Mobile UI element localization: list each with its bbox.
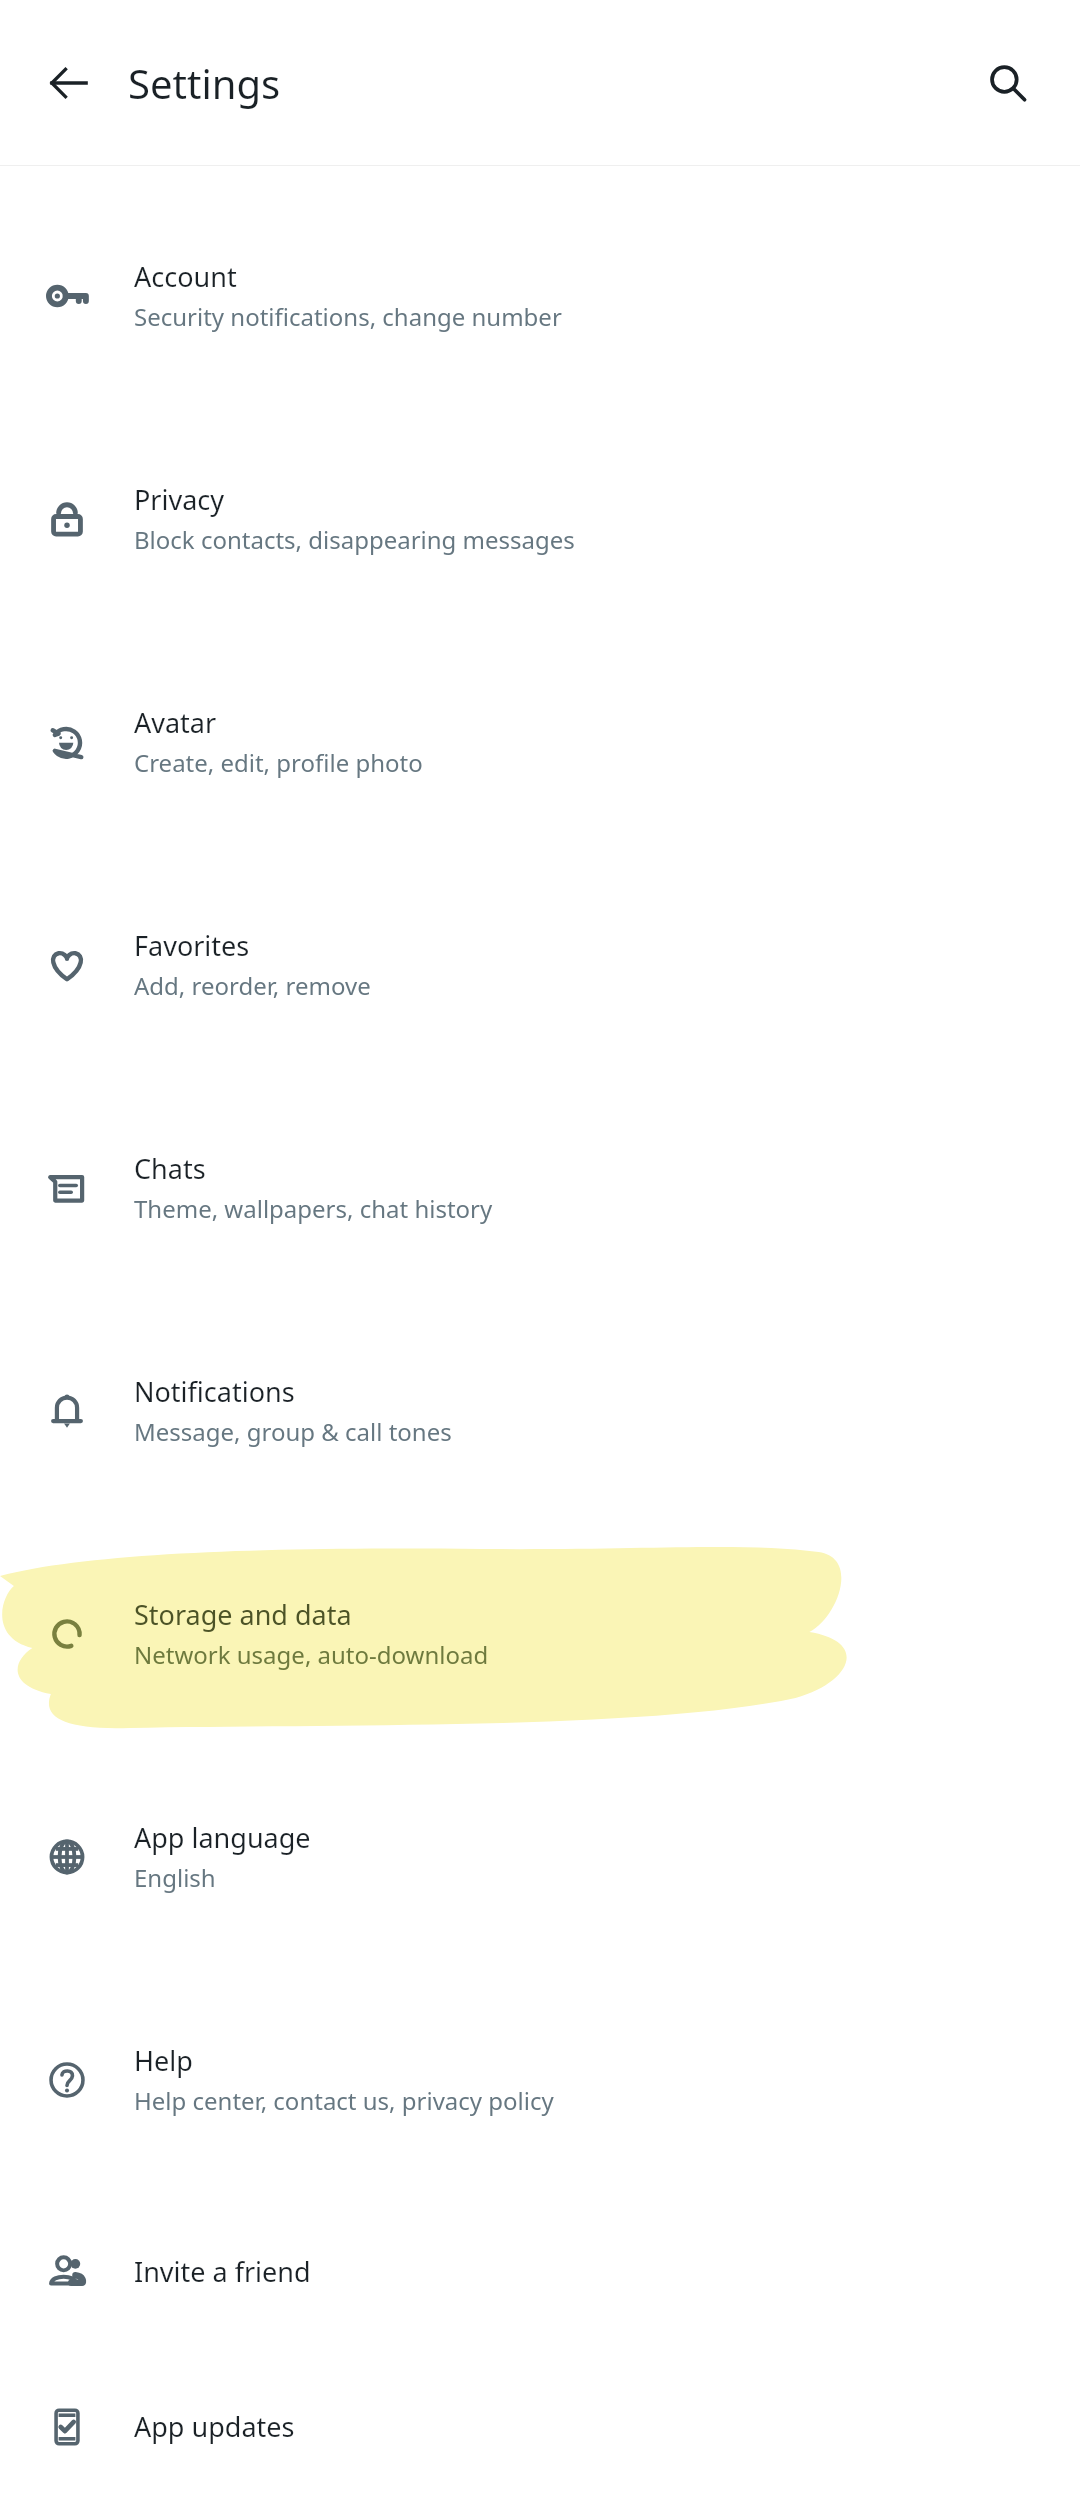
button[interactable]: Search <box>962 38 1052 128</box>
staticText: Notifications <box>134 1373 295 1410</box>
button[interactable]: App language <box>0 1745 1080 1968</box>
button[interactable]: Favorites <box>0 853 1080 1076</box>
staticText: Favorites <box>134 927 250 964</box>
staticText: Invite a friend <box>134 2253 311 2290</box>
button[interactable]: Privacy <box>0 407 1080 630</box>
staticText: Account <box>134 258 237 295</box>
staticText: Add, reorder, remove <box>134 969 371 1002</box>
staticText: Chats <box>134 1150 206 1187</box>
button[interactable]: Chats <box>0 1076 1080 1299</box>
button[interactable]: Storage and data <box>0 1522 1080 1745</box>
staticText: Settings <box>128 56 281 110</box>
button[interactable]: App updates <box>0 2351 1080 2502</box>
staticText: Message, group & call tones <box>134 1415 452 1448</box>
staticText: App language <box>134 1819 311 1856</box>
staticText: Network usage, auto-download <box>134 1638 489 1671</box>
staticText: English <box>134 1861 216 1894</box>
button[interactable]: Avatar <box>0 630 1080 853</box>
staticText: Theme, wallpapers, chat history <box>134 1192 493 1225</box>
button[interactable]: Account <box>0 184 1080 407</box>
staticText: App updates <box>134 2408 295 2445</box>
button[interactable]: Invite a friend <box>0 2191 1080 2351</box>
staticText: Help center, contact us, privacy policy <box>134 2084 554 2117</box>
staticText: Privacy <box>134 481 225 518</box>
staticText: Security notifications, change number <box>134 300 562 333</box>
button[interactable]: Back <box>24 38 114 128</box>
button[interactable]: Help <box>0 1968 1080 2191</box>
button[interactable]: Notifications <box>0 1299 1080 1522</box>
staticText: Avatar <box>134 704 217 741</box>
staticText: Block contacts, disappearing messages <box>134 523 575 556</box>
staticText: Storage and data <box>134 1596 352 1633</box>
staticText: Create, edit, profile photo <box>134 746 423 779</box>
staticText: Help <box>134 2042 193 2079</box>
